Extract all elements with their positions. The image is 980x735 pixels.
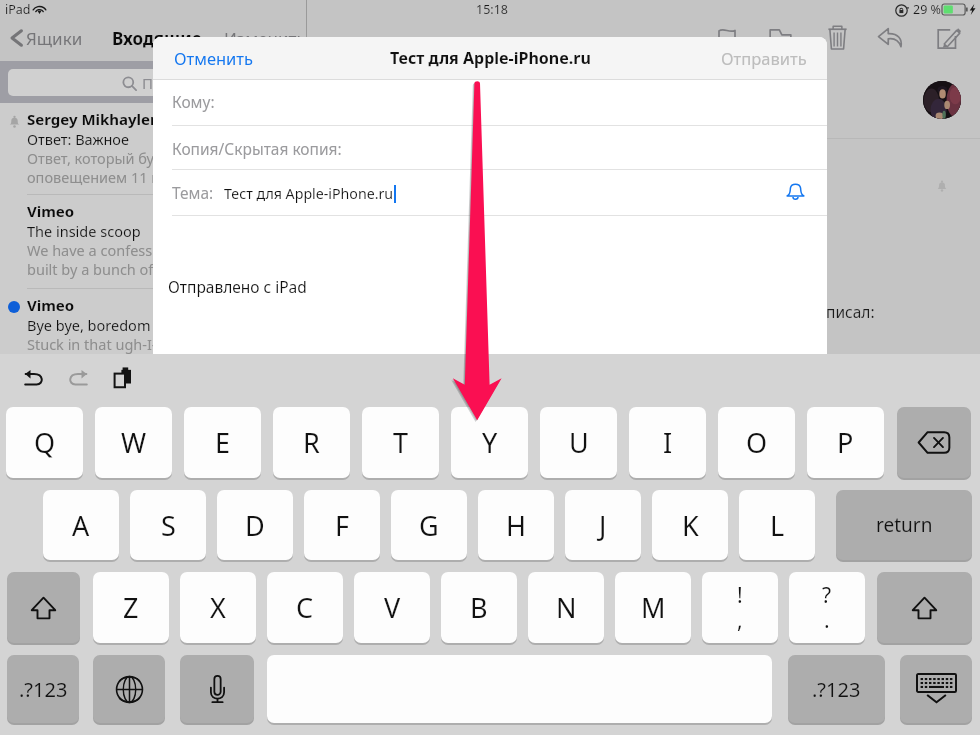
- staticText: R: [303, 424, 320, 461]
- button[interactable]: D: [217, 490, 293, 560]
- button[interactable]: G: [391, 490, 467, 560]
- staticText: Поиск: [142, 73, 187, 93]
- button[interactable]: Numbers: [788, 655, 885, 723]
- button[interactable]: I: [629, 407, 706, 478]
- button[interactable]: Y: [451, 407, 528, 478]
- button[interactable]: Z: [93, 572, 169, 643]
- button[interactable]: O: [718, 407, 795, 478]
- button[interactable]: Q: [6, 407, 83, 478]
- button[interactable]: Hide keyboard: [900, 655, 972, 723]
- button[interactable]: Shift: [7, 572, 80, 643]
- button[interactable]: W: [95, 407, 172, 478]
- button[interactable]: !: [702, 572, 778, 643]
- button[interactable]: Return: [836, 490, 972, 560]
- button[interactable]: K: [652, 490, 728, 560]
- button[interactable]: Change language: [93, 655, 165, 723]
- button[interactable]: V: [354, 572, 430, 643]
- staticText: Кому:: [172, 91, 215, 112]
- staticText: ,: [737, 606, 743, 635]
- staticText: Ответ: Важное: [27, 129, 129, 149]
- button[interactable]: Reply: [875, 22, 905, 52]
- staticText: Тест для Apple-iPhone.ru: [390, 47, 591, 69]
- staticText: Q: [34, 424, 56, 461]
- staticText: O: [746, 424, 768, 461]
- staticText: D: [245, 507, 265, 544]
- staticText: built by a bunch of: [27, 259, 154, 279]
- staticText: A: [72, 507, 90, 544]
- button[interactable]: J: [565, 490, 641, 560]
- button[interactable]: Paste: [109, 364, 137, 392]
- staticText: P: [837, 424, 854, 461]
- button[interactable]: Vimeo: [0, 195, 307, 289]
- staticText: Vimeo: [27, 201, 75, 221]
- button[interactable]: F: [304, 490, 380, 560]
- staticText: Sergey Mikhaylenko: [27, 109, 179, 129]
- button[interactable]: ?: [789, 572, 865, 643]
- staticText: E: [215, 424, 231, 461]
- button[interactable]: R: [273, 407, 350, 478]
- button[interactable]: Тема:: [153, 170, 827, 215]
- staticText: оповещением 11 ма: [27, 167, 171, 187]
- button[interactable]: M: [615, 572, 691, 643]
- button[interactable]: Кому:: [153, 78, 827, 125]
- button[interactable]: Flag: [712, 22, 742, 52]
- button[interactable]: X: [180, 572, 256, 643]
- button[interactable]: Compose: [934, 22, 964, 52]
- staticText: X: [210, 589, 226, 626]
- staticText: !: [737, 581, 743, 610]
- staticText: H: [506, 507, 527, 544]
- button[interactable]: Shift: [877, 572, 972, 643]
- staticText: V: [384, 589, 401, 626]
- staticText: L: [770, 507, 785, 544]
- staticText: Ящики: [26, 27, 83, 50]
- button[interactable]: Отправить: [721, 47, 807, 69]
- staticText: Bye bye, boredom: [27, 315, 151, 335]
- button[interactable]: U: [540, 407, 617, 478]
- staticText: Y: [482, 424, 498, 461]
- button[interactable]: A: [43, 490, 119, 560]
- button[interactable]: S: [130, 490, 206, 560]
- staticText: Отправить: [721, 47, 807, 69]
- staticText: Тест для Apple-iPhone.ru: [224, 184, 394, 203]
- staticText: Z: [123, 589, 139, 626]
- staticText: .?123: [812, 676, 861, 703]
- staticText: W: [121, 424, 147, 461]
- staticText: Ответ, который буд: [27, 148, 162, 168]
- staticText: iPad: [5, 1, 31, 18]
- button[interactable]: Отменить: [174, 47, 254, 69]
- button[interactable]: Vimeo: [0, 289, 307, 361]
- button[interactable]: H: [478, 490, 554, 560]
- staticText: U: [569, 424, 589, 461]
- button[interactable]: C: [267, 572, 343, 643]
- button[interactable]: Sergey Mikhaylenko: [0, 103, 307, 197]
- button[interactable]: B: [441, 572, 517, 643]
- staticText: J: [599, 507, 607, 544]
- staticText: писал:: [826, 301, 875, 322]
- button[interactable]: Копия/Скрытая копия:: [153, 126, 827, 169]
- button[interactable]: Delete: [822, 22, 852, 52]
- button[interactable]: N: [528, 572, 604, 643]
- button[interactable]: Numbers: [7, 655, 79, 723]
- staticText: I: [663, 424, 673, 461]
- staticText: K: [682, 507, 699, 544]
- button[interactable]: T: [362, 407, 439, 478]
- staticText: The inside scoop: [27, 221, 141, 241]
- staticText: ?: [822, 581, 832, 610]
- button[interactable]: Move to folder: [765, 22, 795, 52]
- staticText: return: [876, 512, 933, 538]
- staticText: Отменить: [174, 47, 254, 69]
- button[interactable]: P: [807, 407, 884, 478]
- button[interactable]: L: [739, 490, 815, 560]
- button[interactable]: Redo: [64, 365, 92, 391]
- staticText: Тема:: [172, 182, 214, 203]
- button[interactable]: Undo: [20, 365, 48, 391]
- staticText: Изменить: [224, 27, 306, 50]
- staticText: 15:18: [476, 1, 508, 18]
- staticText: .: [824, 606, 830, 635]
- button[interactable]: Поиск: [8, 69, 300, 96]
- staticText: Stuck in that ugh-I-: [27, 334, 157, 354]
- button[interactable]: E: [184, 407, 261, 478]
- button[interactable]: Dictation: [180, 655, 254, 723]
- button[interactable]: Backspace: [897, 407, 971, 478]
